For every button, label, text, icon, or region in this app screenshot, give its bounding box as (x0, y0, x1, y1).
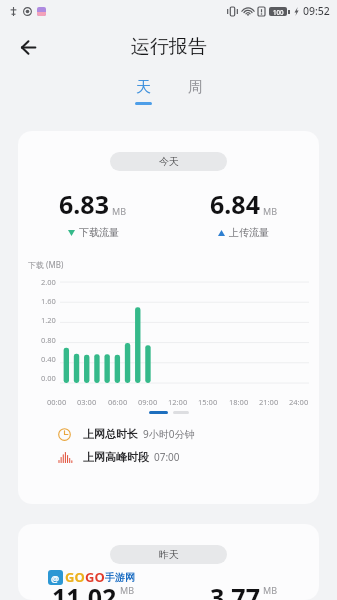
staticText: 18:00 (229, 397, 249, 407)
staticText: 2.00 (41, 277, 56, 287)
staticText: 6.84 (210, 187, 260, 221)
staticText: 上网高峰时段 (83, 450, 149, 464)
staticText: MB (263, 205, 278, 217)
staticText: 09:00 (138, 397, 158, 407)
staticText: GO (65, 568, 85, 586)
staticText: 11.02 (52, 580, 117, 600)
staticText: 手游网 (105, 571, 135, 584)
staticText: 下载 (MB) (28, 259, 64, 270)
staticText: 100 (273, 8, 284, 16)
button[interactable]: 天 (125, 72, 161, 116)
staticText: MB (112, 205, 127, 217)
staticText: 周 (188, 78, 203, 97)
staticText: 24:00 (289, 397, 309, 407)
staticText: 1.60 (41, 296, 56, 306)
staticText: 1.20 (41, 315, 56, 325)
button[interactable]: Page 2 (173, 411, 189, 414)
staticText: 今天 (159, 155, 179, 168)
staticText: @ (51, 572, 60, 584)
staticText: 07:00 (154, 450, 180, 464)
staticText: 运行报告 (131, 35, 207, 59)
staticText: 昨天 (159, 548, 179, 561)
button[interactable]: 今天 (110, 152, 227, 171)
staticText: 下载流量 (79, 226, 119, 239)
staticText: 0.80 (41, 335, 56, 345)
button[interactable]: 昨天 (110, 545, 227, 564)
staticText: 天 (136, 78, 151, 97)
staticText: MB (263, 584, 278, 596)
staticText: 6.83 (59, 187, 109, 221)
staticText: 15:00 (198, 397, 218, 407)
staticText: 0.40 (41, 354, 56, 364)
staticText: 12:00 (168, 397, 188, 407)
staticText: 09:52 (303, 4, 330, 18)
staticText: 上传流量 (229, 226, 269, 239)
staticText: GO (85, 568, 105, 586)
staticText: MB (120, 584, 135, 596)
button[interactable]: 周 (177, 72, 213, 116)
staticText: 9小时0分钟 (143, 427, 195, 441)
staticText: 21:00 (259, 397, 279, 407)
staticText: 上网总时长 (83, 427, 138, 441)
button[interactable]: Back (8, 26, 50, 68)
staticText: 00:00 (47, 397, 67, 407)
staticText: 06:00 (108, 397, 128, 407)
staticText: 0.00 (41, 373, 56, 383)
button[interactable]: Page 1 (149, 411, 168, 414)
staticText: 3.77 (210, 580, 260, 600)
staticText: 03:00 (77, 397, 97, 407)
